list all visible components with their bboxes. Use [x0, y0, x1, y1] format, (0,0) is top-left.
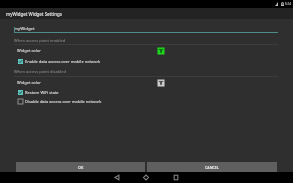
- button[interactable]: CANCEL: [147, 162, 277, 172]
- button[interactable]: Home: [138, 172, 154, 183]
- button[interactable]: Widget color: [0, 45, 293, 56]
- staticText: Widget color: [17, 80, 41, 85]
- staticText: 5:14: [285, 2, 291, 6]
- staticText: OK: [78, 165, 84, 170]
- button[interactable]: Recent apps: [168, 172, 184, 183]
- button[interactable]: Restore WiFi state: [0, 87, 293, 97]
- staticText: When access point enabled: [14, 38, 66, 43]
- staticText: myWidget Widget Settings: [6, 11, 62, 17]
- button[interactable]: Disable data access over mobile network: [0, 96, 293, 106]
- button[interactable]: Enable data access over mobile network: [0, 56, 293, 66]
- button[interactable]: Widget color: [0, 77, 293, 88]
- button[interactable]: Back: [109, 172, 125, 183]
- staticText: CANCEL: [205, 165, 219, 170]
- staticText: myWidget: [14, 25, 35, 31]
- staticText: Widget color: [17, 48, 41, 53]
- staticText: Disable data access over mobile network: [25, 99, 102, 104]
- staticText: Enable data access over mobile network: [25, 59, 101, 64]
- staticText: Restore WiFi state: [25, 90, 59, 95]
- button[interactable]: OK: [16, 162, 145, 172]
- staticText: When access point disabled: [14, 69, 66, 74]
